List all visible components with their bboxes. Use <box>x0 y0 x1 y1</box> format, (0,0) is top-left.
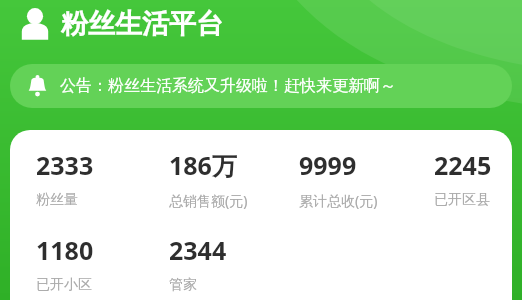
staticText: 2333 <box>36 148 94 182</box>
staticText: 9999 <box>299 148 357 182</box>
button[interactable]: Announcement <box>10 64 512 108</box>
button[interactable]: 2344 <box>169 233 287 294</box>
other: Announcement <box>27 75 48 98</box>
other: Profile <box>20 7 50 41</box>
staticText: 累计总收(元) <box>299 191 378 210</box>
staticText: 总销售额(元) <box>169 191 248 210</box>
staticText: 1180 <box>36 233 94 267</box>
staticText: 2245 <box>434 148 492 182</box>
staticText: 已开小区 <box>36 276 92 294</box>
staticText: 2344 <box>169 233 227 267</box>
button[interactable]: 186万 <box>169 148 287 210</box>
staticText: 粉丝量 <box>36 191 78 209</box>
staticText: 粉丝生活平台 <box>61 7 223 41</box>
staticText: 管家 <box>169 276 197 294</box>
staticText: 186万 <box>169 148 237 182</box>
button[interactable]: 1180 <box>36 233 154 294</box>
button[interactable]: 9999 <box>299 148 417 210</box>
button[interactable]: 2245 <box>434 148 512 209</box>
button[interactable]: 2333 <box>36 148 154 209</box>
staticText: 公告：粉丝生活系统又升级啦！赶快来更新啊～ <box>60 76 396 96</box>
button[interactable]: Profile <box>16 5 227 43</box>
staticText: 已开区县 <box>434 191 490 209</box>
